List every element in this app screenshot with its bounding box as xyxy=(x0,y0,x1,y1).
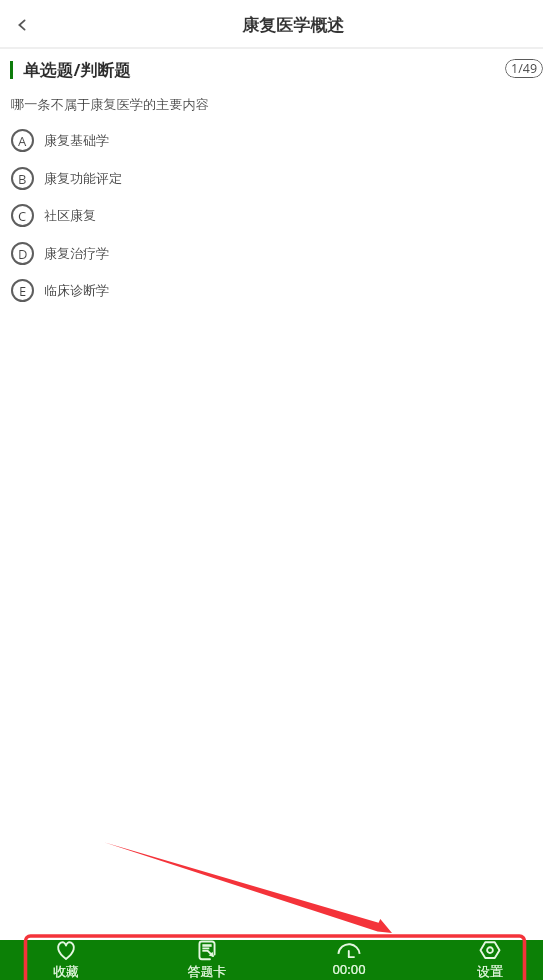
staticText: 单选题/判断题 xyxy=(23,58,131,81)
staticText: 1/49 xyxy=(511,60,538,77)
button[interactable]: 设置 Settings xyxy=(435,940,543,980)
staticText: 设置 xyxy=(435,963,543,979)
staticText: 收藏 xyxy=(11,963,121,979)
staticText: 哪一条不属于康复医学的主要内容 xyxy=(11,96,209,113)
staticText: 康复基础学 xyxy=(44,132,109,148)
staticText: 康复医学概述 xyxy=(242,15,344,36)
button[interactable]: A xyxy=(0,125,543,155)
staticText: 答题卡 xyxy=(152,963,262,979)
button[interactable]: B xyxy=(0,163,543,193)
staticText: D xyxy=(18,245,28,263)
button[interactable]: 1/49 xyxy=(505,59,543,78)
button[interactable]: Timer 00:00 xyxy=(294,940,404,980)
button[interactable]: E xyxy=(0,275,543,305)
staticText: C xyxy=(18,207,27,225)
staticText: 康复功能评定 xyxy=(44,170,122,186)
staticText: 临床诊断学 xyxy=(44,282,109,298)
button[interactable]: 收藏 Favourite xyxy=(11,940,121,980)
staticText: 康复治疗学 xyxy=(44,245,109,261)
button[interactable]: D xyxy=(0,238,543,268)
staticText: E xyxy=(19,282,27,300)
staticText: A xyxy=(18,132,27,150)
staticText: 社区康复 xyxy=(44,207,96,223)
button[interactable]: Back xyxy=(4,7,40,43)
button[interactable]: 答题卡 Answer sheet xyxy=(152,940,262,980)
staticText: 00:00 xyxy=(294,960,404,978)
button[interactable]: C xyxy=(0,200,543,230)
staticText: B xyxy=(18,170,27,188)
